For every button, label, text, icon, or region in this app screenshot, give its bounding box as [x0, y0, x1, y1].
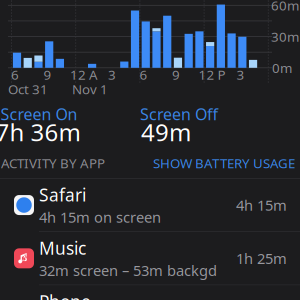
staticText: Screen On [0, 103, 77, 125]
staticText: 49m [141, 116, 191, 148]
staticText: 7h 36m [0, 116, 80, 148]
staticText: ACTIVITY BY APP [1, 154, 105, 172]
staticText: SHOW BATTERY USAGE [153, 154, 295, 172]
staticText: 3 [108, 66, 116, 83]
staticText: Music [39, 237, 86, 260]
staticText: Screen Off [140, 103, 218, 125]
staticText: Nov 1 [72, 80, 108, 98]
staticText: 0m [272, 59, 292, 77]
staticText: 30m [271, 28, 299, 45]
button[interactable]: Music [0, 232, 300, 285]
staticText: 9 [43, 66, 51, 83]
staticText: Phone [39, 290, 91, 300]
staticText: 32m screen – 53m backgd [39, 261, 217, 280]
button[interactable]: Phone [0, 285, 300, 300]
staticText: 12 P [198, 66, 225, 83]
staticText: 4h 15m on screen [39, 207, 161, 227]
staticText: Safari [39, 183, 86, 206]
staticText: 3 [236, 66, 244, 83]
button[interactable]: SHOW BATTERY USAGE [0, 150, 300, 178]
staticText: 6 [139, 66, 147, 83]
staticText: 12 A [70, 66, 98, 83]
staticText: 6 [11, 66, 19, 83]
button[interactable]: Safari [0, 179, 300, 231]
staticText: Oct 31 [8, 80, 48, 98]
staticText: 1h 25m [236, 249, 287, 268]
staticText: 4h 15m [236, 195, 287, 215]
staticText: 9 [172, 66, 180, 83]
staticText: 60m [271, 0, 299, 14]
